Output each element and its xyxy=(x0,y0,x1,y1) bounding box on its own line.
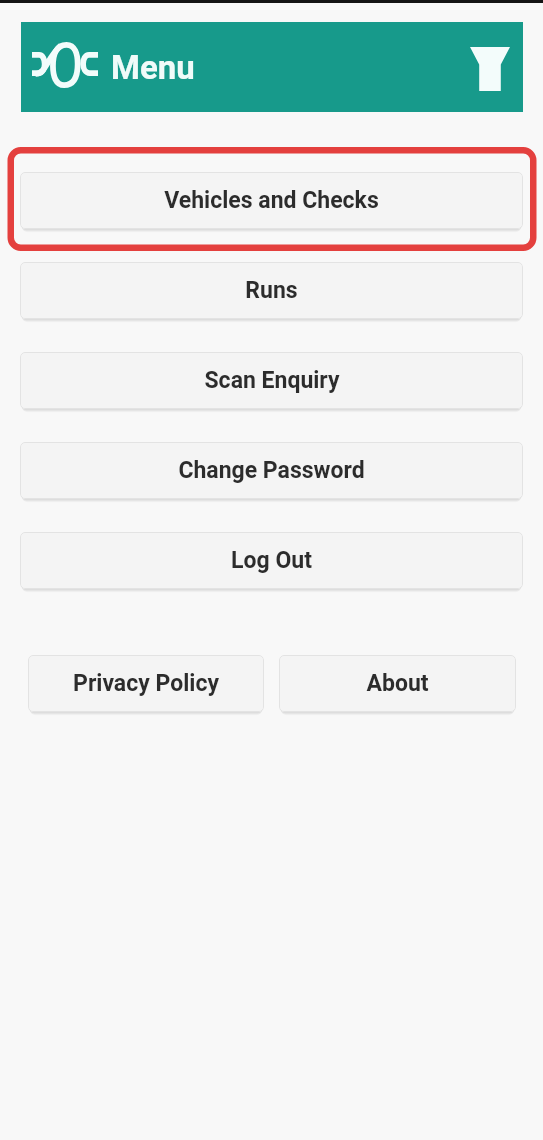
staticText: Scan Enquiry xyxy=(204,367,340,394)
button[interactable]: Scan Enquiry xyxy=(20,352,523,409)
button[interactable]: Log Out xyxy=(20,532,523,589)
button[interactable]: About xyxy=(279,655,516,712)
button[interactable]: Change Password xyxy=(20,442,523,499)
button[interactable]: Filter xyxy=(457,22,523,112)
staticText: About xyxy=(366,670,429,697)
button[interactable]: Privacy Policy xyxy=(28,655,264,712)
staticText: Log Out xyxy=(231,547,312,574)
button[interactable]: Vehicles and Checks xyxy=(20,172,523,229)
staticText: Menu xyxy=(111,48,195,87)
staticText: Runs xyxy=(245,277,298,304)
button[interactable]: Runs xyxy=(20,262,523,319)
staticText: Change Password xyxy=(178,457,365,484)
staticText: Vehicles and Checks xyxy=(164,187,379,214)
staticText: Privacy Policy xyxy=(73,670,219,697)
